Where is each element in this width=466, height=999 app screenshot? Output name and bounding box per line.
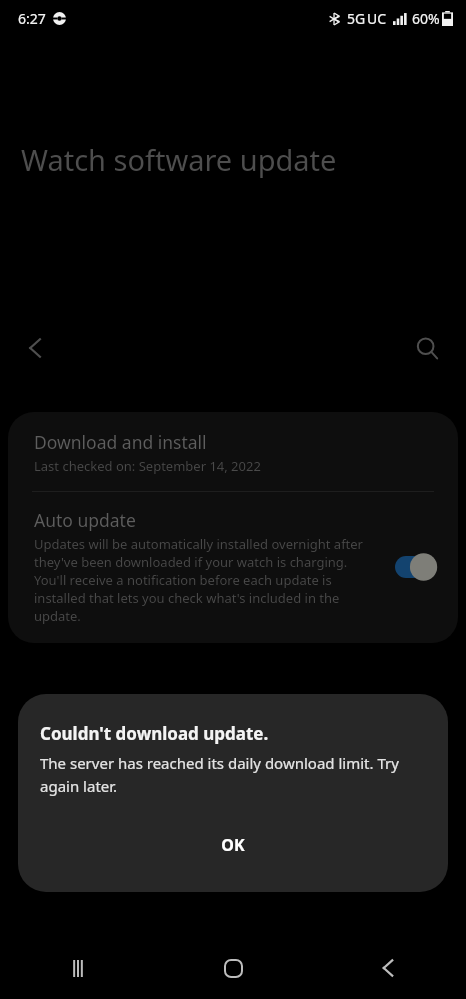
button[interactable] xyxy=(388,550,442,584)
staticText: 5G xyxy=(347,9,366,28)
button[interactable]: Search xyxy=(402,323,452,373)
staticText: Updates will be automatically installed … xyxy=(34,535,378,625)
staticText: 60% xyxy=(412,9,440,28)
staticText: The server has reached its daily downloa… xyxy=(40,753,426,796)
button[interactable]: Recents xyxy=(0,937,156,999)
staticText: OK xyxy=(221,834,245,856)
button[interactable]: Home xyxy=(156,937,311,999)
staticText: Download and install xyxy=(34,430,207,454)
button[interactable]: Download and install xyxy=(8,412,458,491)
staticText: 6:27 xyxy=(18,9,46,28)
staticText: Couldn't download update. xyxy=(40,722,269,745)
staticText: Auto update xyxy=(34,508,136,532)
staticText: Last checked on: September 14, 2022 xyxy=(34,457,261,475)
staticText: UC xyxy=(367,9,387,28)
staticText: Watch software update xyxy=(21,140,337,179)
button[interactable]: Auto update xyxy=(8,492,458,643)
button[interactable]: Back xyxy=(10,322,62,374)
button[interactable]: Back xyxy=(311,937,466,999)
button[interactable]: OK xyxy=(18,818,448,872)
